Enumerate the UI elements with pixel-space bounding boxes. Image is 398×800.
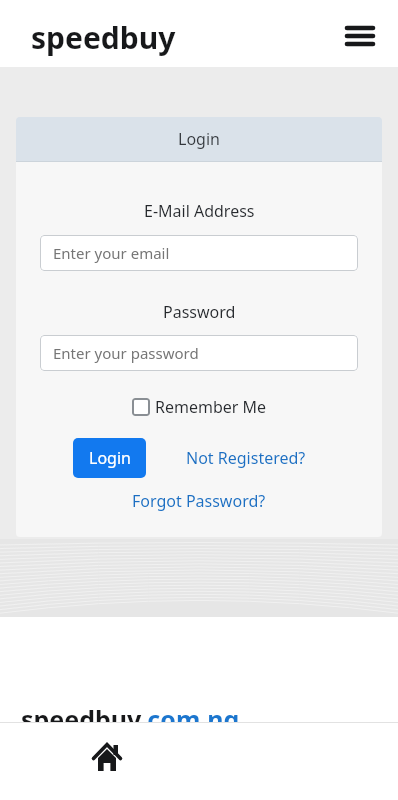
button[interactable] — [345, 24, 375, 48]
staticText: Remember Me — [155, 396, 267, 418]
staticText: E-Mail Address — [144, 200, 255, 222]
staticText: Not Registered? — [186, 447, 306, 469]
staticText: Forgot Password? — [132, 490, 266, 512]
button[interactable]: Login — [73, 438, 146, 478]
staticText: speedbuy.com.ng — [21, 702, 240, 736]
button[interactable] — [92, 742, 122, 774]
button[interactable]: Enter your email — [40, 235, 358, 271]
staticText: Login — [178, 128, 220, 150]
button[interactable]: Remember Me — [132, 396, 267, 418]
staticText: Password — [163, 301, 236, 323]
button[interactable]: Enter your password — [40, 335, 358, 371]
staticText: speedbuy — [31, 17, 176, 58]
staticText: Enter your email — [53, 243, 170, 263]
button[interactable]: Forgot Password? — [132, 490, 266, 512]
staticText: Login — [89, 447, 131, 469]
button[interactable]: Not Registered? — [166, 438, 326, 478]
staticText: Enter your password — [53, 343, 199, 363]
